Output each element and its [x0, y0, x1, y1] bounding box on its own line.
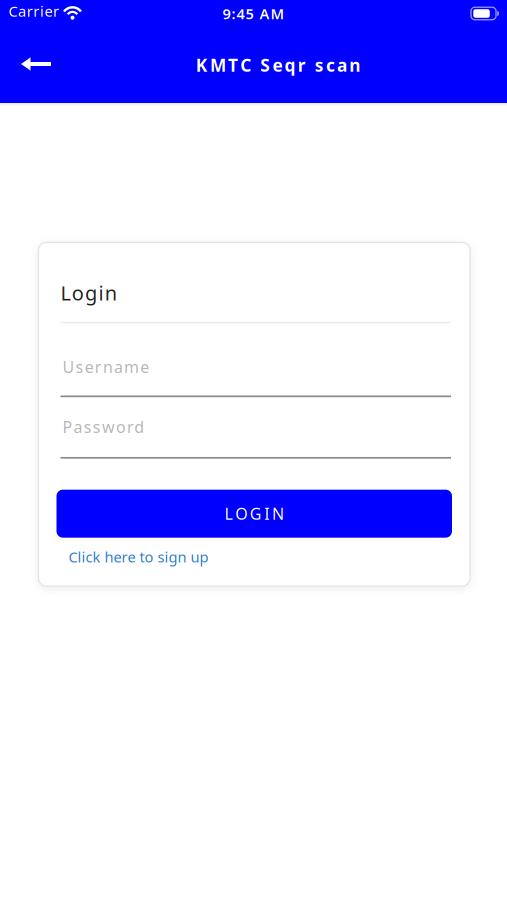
staticText: 9:45 AM	[222, 4, 284, 23]
staticText: Carrier	[8, 1, 59, 21]
staticText: KMTC Seqr scan	[196, 53, 360, 76]
button[interactable]: Back	[0, 35, 67, 93]
button[interactable]: LOGIN	[56, 490, 452, 538]
staticText: Login	[60, 279, 117, 306]
staticText: Password	[62, 416, 144, 437]
staticText: LOGIN	[225, 503, 284, 524]
staticText: Username	[62, 356, 149, 377]
staticText: Click here to sign up	[68, 547, 208, 567]
button[interactable]: Click here to sign up	[68, 547, 208, 567]
